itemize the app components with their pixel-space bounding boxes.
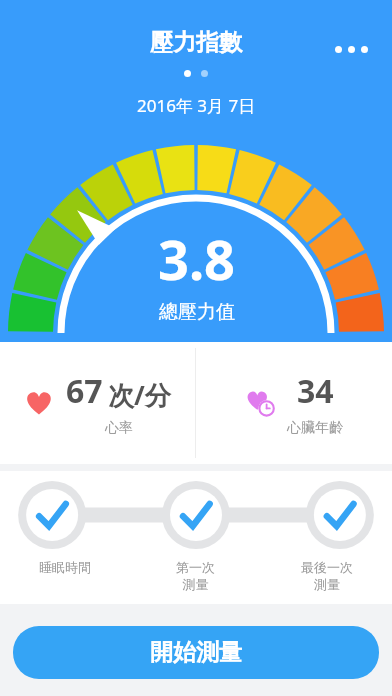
staticText: 心率 (105, 419, 133, 437)
button[interactable]: 34 (196, 342, 392, 464)
staticText: 第一次 測量 (176, 559, 215, 593)
staticText: 2016年 3月 7日 (137, 94, 256, 117)
staticText: 最後一次 測量 (301, 559, 353, 593)
button[interactable]: More options (324, 34, 378, 64)
staticText: 3.8 (158, 222, 235, 296)
staticText: 壓力指數 (150, 28, 242, 57)
staticText: 34 (297, 369, 334, 413)
button[interactable]: 開始測量 (13, 626, 379, 679)
staticText: 睡眠時間 (39, 559, 91, 575)
staticText: 次/分 (108, 377, 171, 413)
staticText: 心臟年齡 (287, 419, 343, 437)
staticText: 總壓力值 (159, 300, 235, 324)
staticText: 67 (66, 369, 103, 413)
staticText: 開始測量 (150, 638, 242, 667)
button[interactable]: 67 (0, 342, 195, 464)
